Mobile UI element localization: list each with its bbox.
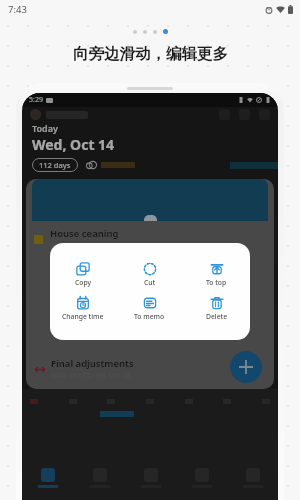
staticText: To memo xyxy=(134,312,165,321)
staticText: 向旁边滑动，编辑更多 xyxy=(73,44,228,64)
staticText: Wed, Oct 14 - Fri, Oct 16 xyxy=(50,241,129,251)
staticText: Final adjustments xyxy=(51,357,134,370)
staticText: Wed, Oct 14 xyxy=(32,135,115,154)
button[interactable]: Tab 5 xyxy=(227,460,278,496)
button[interactable]: Tab 3 xyxy=(125,460,176,496)
staticText: 7:43 xyxy=(8,3,27,16)
staticText: 5:29 xyxy=(29,95,43,105)
button[interactable]: Tab 2 xyxy=(74,460,125,496)
staticText: Today xyxy=(32,122,58,134)
staticText: Cut xyxy=(144,278,156,287)
button[interactable]: Tab 4 xyxy=(176,460,227,496)
button[interactable]: Add xyxy=(230,351,262,383)
staticText: House ceaning xyxy=(50,227,119,240)
button[interactable]: Delete xyxy=(183,295,250,322)
staticText: 112 days xyxy=(39,160,71,170)
button[interactable]: Copy xyxy=(50,261,116,288)
button[interactable]: To memo xyxy=(116,295,183,322)
button[interactable]: House ceaning xyxy=(34,227,266,251)
staticText: Change time xyxy=(62,312,104,321)
button[interactable]: Cut xyxy=(116,261,183,288)
staticText: Delete xyxy=(206,312,228,321)
button[interactable]: To top xyxy=(183,261,250,288)
staticText: Copy xyxy=(75,278,92,287)
staticText: To top xyxy=(206,278,227,287)
button[interactable]: Tab 1 xyxy=(22,460,74,496)
button[interactable]: Final adjustments xyxy=(34,357,266,381)
button[interactable]: Change time xyxy=(50,295,116,322)
